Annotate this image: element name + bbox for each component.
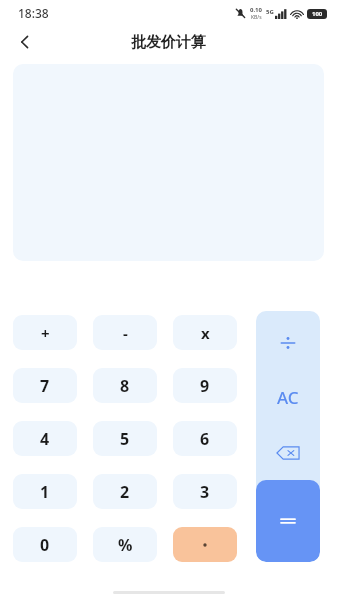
button[interactable]: 8 [93,368,157,403]
button[interactable]: Back [8,26,42,58]
button[interactable]: + [13,315,77,350]
staticText: 5G [266,8,274,16]
button[interactable]: 4 [13,421,77,456]
button[interactable]: 6 [173,421,237,456]
staticText: 7 [40,375,50,397]
staticText: + [41,323,50,343]
staticText: 2 [120,481,130,503]
staticText: x [201,323,210,343]
staticText: 5 [120,428,130,450]
button[interactable]: x [173,315,237,350]
button[interactable]: 2 [93,474,157,509]
button[interactable]: % [93,527,157,562]
staticText: - [123,323,128,343]
staticText: % [118,534,133,556]
staticText: 3 [200,481,210,503]
button[interactable]: 0 [13,527,77,562]
staticText: KB/s [251,14,262,21]
button[interactable]: 3 [173,474,237,509]
staticText: 4 [40,428,50,450]
staticText: 100 [312,10,323,18]
button[interactable]: 1 [13,474,77,509]
button[interactable]: 7 [13,368,77,403]
button[interactable]: Backspace [256,425,320,480]
staticText: 18:38 [18,5,49,21]
staticText: 1 [40,481,50,503]
button[interactable]: AC [256,370,320,425]
staticText: 6 [200,428,210,450]
staticText: 0.10 [250,6,262,14]
button[interactable]: 5 [93,421,157,456]
button[interactable]: Decimal point [173,527,237,562]
button[interactable]: Equals [256,480,320,562]
staticText: 批发价计算 [131,33,206,52]
staticText: 8 [120,375,130,397]
button[interactable]: Divide [256,315,320,370]
button[interactable]: - [93,315,157,350]
staticText: 0 [40,534,50,556]
button[interactable]: 9 [173,368,237,403]
staticText: 9 [200,375,210,397]
staticText: AC [277,386,299,409]
